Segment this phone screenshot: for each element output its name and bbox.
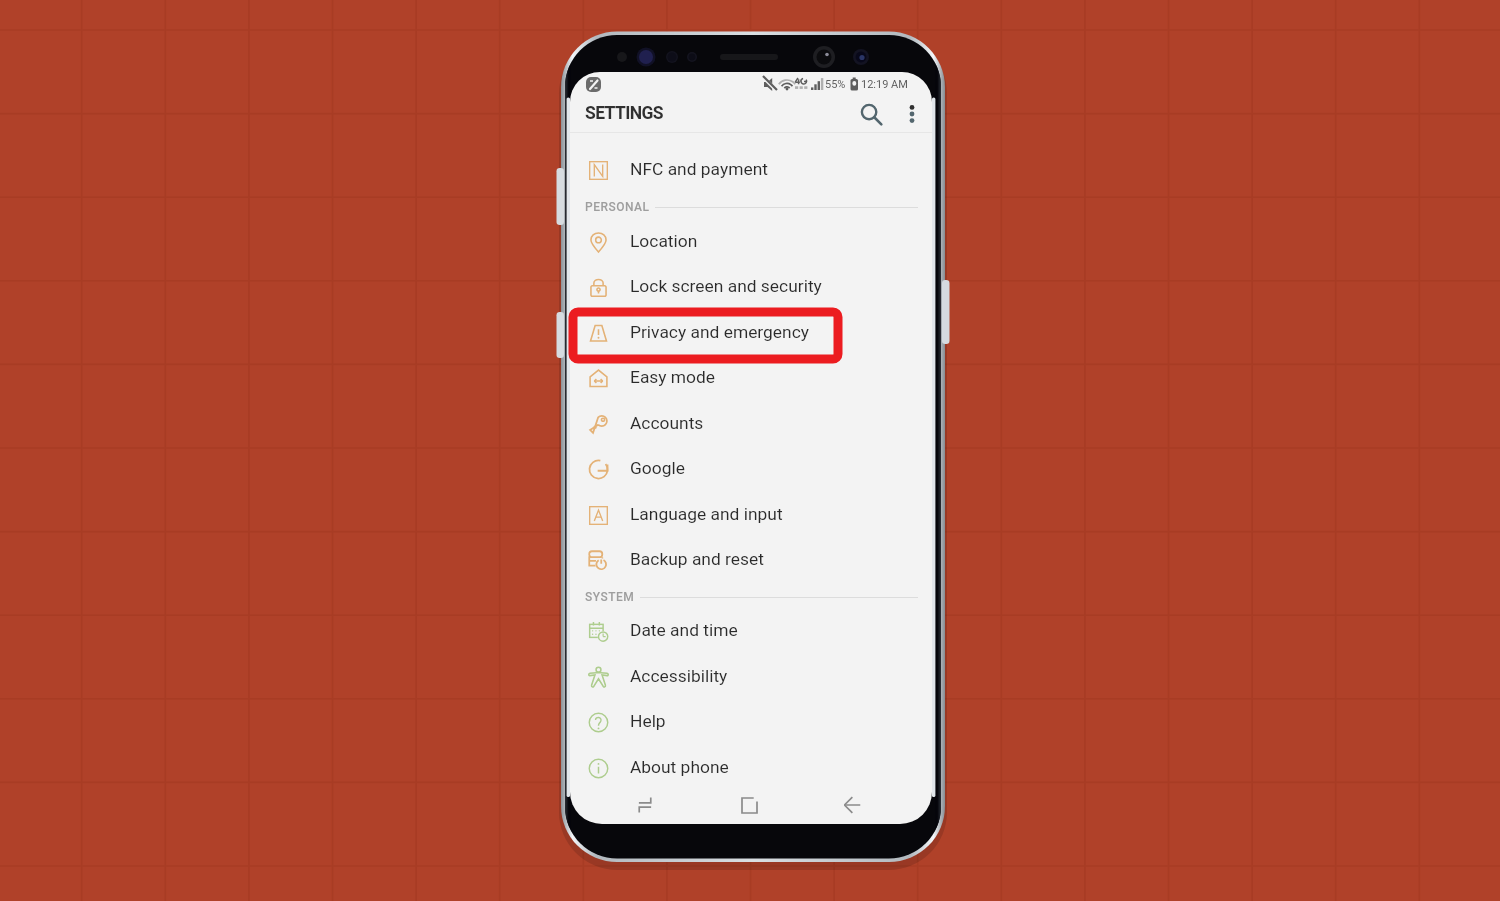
staticText: Language and input <box>630 504 783 524</box>
staticText: Accounts <box>630 413 704 433</box>
staticText: 12:19 AM <box>861 78 908 91</box>
staticText: SETTINGS <box>585 103 663 124</box>
button[interactable]: Lock screen and security <box>570 265 932 310</box>
button[interactable]: NFC and payment <box>570 148 932 193</box>
button[interactable]: Date and time <box>570 609 932 654</box>
button[interactable]: Easy mode <box>570 356 932 401</box>
staticText: Privacy and emergency <box>630 322 810 342</box>
staticText: NFC and payment <box>630 159 768 179</box>
button[interactable]: About phone <box>570 746 932 791</box>
button[interactable]: More options <box>892 94 932 134</box>
staticText: PERSONAL <box>585 200 650 214</box>
button[interactable]: Google <box>570 447 932 492</box>
button[interactable]: Location <box>570 220 932 265</box>
button[interactable]: Backup and reset <box>570 538 932 583</box>
staticText: Google <box>630 458 685 478</box>
button[interactable]: Home <box>728 786 770 824</box>
staticText: Accessibility <box>630 666 728 686</box>
button[interactable]: Language and input <box>570 493 932 538</box>
staticText: Location <box>630 231 698 251</box>
staticText: Lock screen and security <box>630 276 822 296</box>
staticText: 55% <box>825 78 846 91</box>
button[interactable]: Accessibility <box>570 655 932 700</box>
button[interactable]: Search <box>850 93 892 135</box>
staticText: Help <box>630 711 666 731</box>
staticText: About phone <box>630 757 729 777</box>
staticText: Date and time <box>630 620 738 640</box>
button[interactable]: Back <box>831 786 873 824</box>
button[interactable]: Accounts <box>570 402 932 447</box>
staticText: SYSTEM <box>585 590 635 604</box>
staticText: Backup and reset <box>630 549 764 569</box>
button[interactable]: Help <box>570 700 932 745</box>
staticText: Easy mode <box>630 367 716 387</box>
button[interactable]: Recents <box>624 786 666 824</box>
button[interactable]: Privacy and emergency <box>570 311 932 356</box>
